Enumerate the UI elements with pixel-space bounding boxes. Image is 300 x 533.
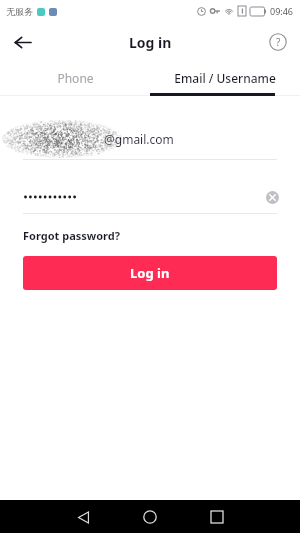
staticText: 09:46 — [270, 5, 294, 17]
button[interactable]: Log in — [23, 256, 277, 290]
button[interactable]: Phone — [0, 62, 150, 93]
staticText: Phone — [57, 70, 94, 86]
button[interactable]: Email / Username — [150, 62, 300, 93]
button[interactable]: Clear password — [262, 187, 282, 207]
button[interactable]: Recent apps — [202, 502, 232, 532]
button[interactable]: Forgot password? — [23, 228, 120, 243]
staticText: Log in — [130, 264, 170, 282]
staticText: 无服务 — [6, 6, 33, 17]
staticText: @gmail.com — [104, 131, 174, 147]
button[interactable]: Back — [68, 502, 98, 532]
staticText: Log in — [129, 33, 172, 52]
button[interactable]: Back — [8, 28, 36, 56]
button[interactable]: Help — [267, 31, 289, 53]
staticText: ? — [276, 35, 281, 49]
staticText: Email / Username — [174, 70, 276, 86]
button[interactable]: Home — [135, 502, 165, 532]
